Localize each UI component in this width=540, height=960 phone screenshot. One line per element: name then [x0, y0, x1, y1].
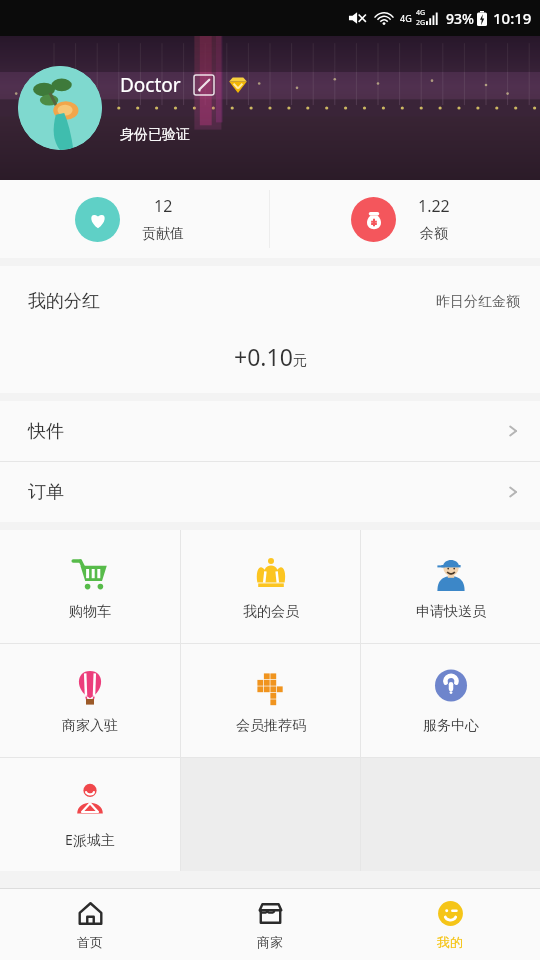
- staticText: 身份已验证: [120, 126, 190, 144]
- staticText: 昨日分红金额: [436, 293, 520, 311]
- staticText: E派城主: [65, 830, 115, 849]
- button[interactable]: Balance: [270, 180, 540, 258]
- staticText: 快件: [28, 420, 64, 443]
- staticText: 会员推荐码: [236, 717, 306, 735]
- staticText: 首页: [77, 934, 103, 950]
- staticText: 商家: [257, 934, 283, 950]
- staticText: 余额: [420, 225, 448, 243]
- staticText: 我的会员: [243, 603, 299, 621]
- button[interactable]: 我的分红: [0, 266, 540, 393]
- staticText: 4G: [400, 12, 412, 24]
- staticText: 我的: [437, 934, 463, 950]
- staticText: 元: [293, 352, 307, 370]
- staticText: 1.22: [418, 195, 450, 217]
- button[interactable]: 我的: [360, 889, 540, 960]
- button[interactable]: 订单: [0, 462, 540, 522]
- button[interactable]: 申请快送员: [361, 530, 540, 643]
- button[interactable]: 会员推荐码: [181, 644, 360, 757]
- staticText: 93%: [446, 9, 474, 28]
- staticText: 我的分红: [28, 290, 100, 313]
- staticText: Doctor: [120, 72, 181, 98]
- staticText: 商家入驻: [62, 717, 118, 735]
- staticText: 12: [154, 195, 173, 217]
- staticText: +0.10: [234, 341, 293, 372]
- staticText: 服务中心: [423, 717, 479, 735]
- button[interactable]: 商家: [180, 889, 360, 960]
- staticText: 购物车: [69, 603, 111, 621]
- button[interactable]: 服务中心: [361, 644, 540, 757]
- button[interactable]: 我的会员: [181, 530, 360, 643]
- button[interactable]: E派城主: [0, 758, 180, 871]
- button[interactable]: Edit profile: [193, 74, 215, 96]
- staticText: 10:19: [493, 8, 532, 28]
- button[interactable]: Contribution: [0, 180, 269, 258]
- staticText: 4G: [416, 8, 426, 18]
- button[interactable]: 快件: [0, 401, 540, 461]
- staticText: 贡献值: [142, 225, 184, 243]
- staticText: 2G: [416, 18, 426, 28]
- button[interactable]: Avatar: [18, 66, 102, 150]
- staticText: 订单: [28, 481, 64, 504]
- staticText: 申请快送员: [416, 603, 486, 621]
- button[interactable]: 首页: [0, 889, 180, 960]
- button[interactable]: 商家入驻: [0, 644, 180, 757]
- button[interactable]: 购物车: [0, 530, 180, 643]
